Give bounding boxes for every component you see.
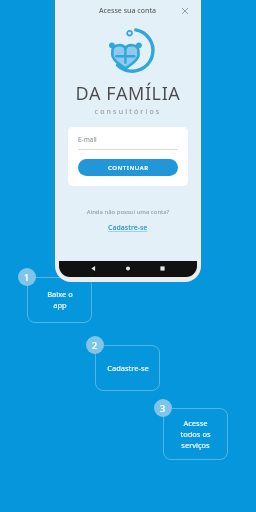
- staticText: consultórios: [59, 107, 197, 117]
- button[interactable]: Baixe o: [27, 277, 92, 323]
- button[interactable]: Cadastre-se: [104, 222, 152, 234]
- staticText: 1: [24, 271, 30, 283]
- staticText: CONTINUAR: [108, 164, 149, 172]
- staticText: Cadastre-se: [108, 223, 148, 233]
- staticText: 2: [92, 339, 98, 351]
- staticText: todos os: [180, 429, 211, 439]
- staticText: Acesse sua conta: [99, 6, 157, 16]
- staticText: Ainda não possui uma conta?: [59, 208, 197, 216]
- button[interactable]: Fechar: [179, 5, 191, 17]
- staticText: Acesse: [183, 418, 208, 428]
- staticText: 3: [160, 402, 166, 414]
- staticText: app: [53, 300, 67, 310]
- button[interactable]: Cadastre-se: [95, 345, 160, 391]
- staticText: Cadastre-se: [107, 363, 149, 373]
- staticText: Baixe o: [47, 289, 73, 299]
- button[interactable]: Acesse: [163, 408, 228, 460]
- staticText: E-mail: [78, 135, 97, 144]
- button[interactable]: CONTINUAR: [78, 159, 178, 176]
- staticText: DA FAMÍLIA: [59, 81, 197, 106]
- staticText: serviços: [181, 440, 210, 450]
